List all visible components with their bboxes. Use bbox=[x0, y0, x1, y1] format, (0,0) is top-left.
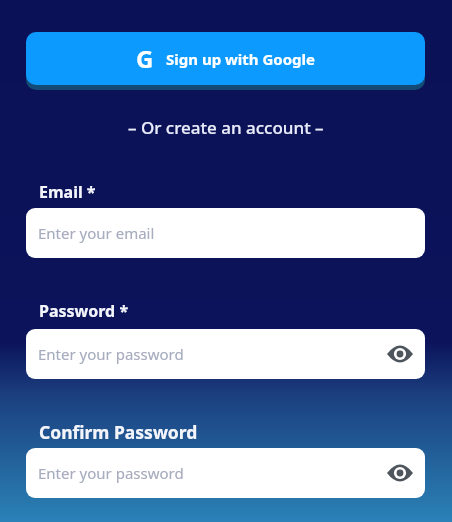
staticText: Password * bbox=[39, 300, 129, 322]
staticText: Sign up with Google bbox=[166, 49, 316, 69]
button[interactable] bbox=[387, 464, 413, 482]
button[interactable]: Enter your password bbox=[26, 329, 425, 379]
button[interactable]: Enter your email bbox=[26, 208, 425, 258]
staticText: Confirm Password bbox=[39, 420, 198, 444]
button[interactable]: G bbox=[26, 32, 425, 85]
staticText: Enter your password bbox=[38, 344, 184, 364]
staticText: Enter your email bbox=[38, 223, 155, 243]
staticText: G bbox=[136, 42, 154, 75]
button[interactable]: Enter your password bbox=[26, 448, 425, 498]
staticText: Email * bbox=[39, 181, 96, 203]
staticText: Enter your password bbox=[38, 463, 184, 483]
staticText: – Or create an account – bbox=[128, 116, 324, 139]
button[interactable] bbox=[387, 345, 413, 363]
